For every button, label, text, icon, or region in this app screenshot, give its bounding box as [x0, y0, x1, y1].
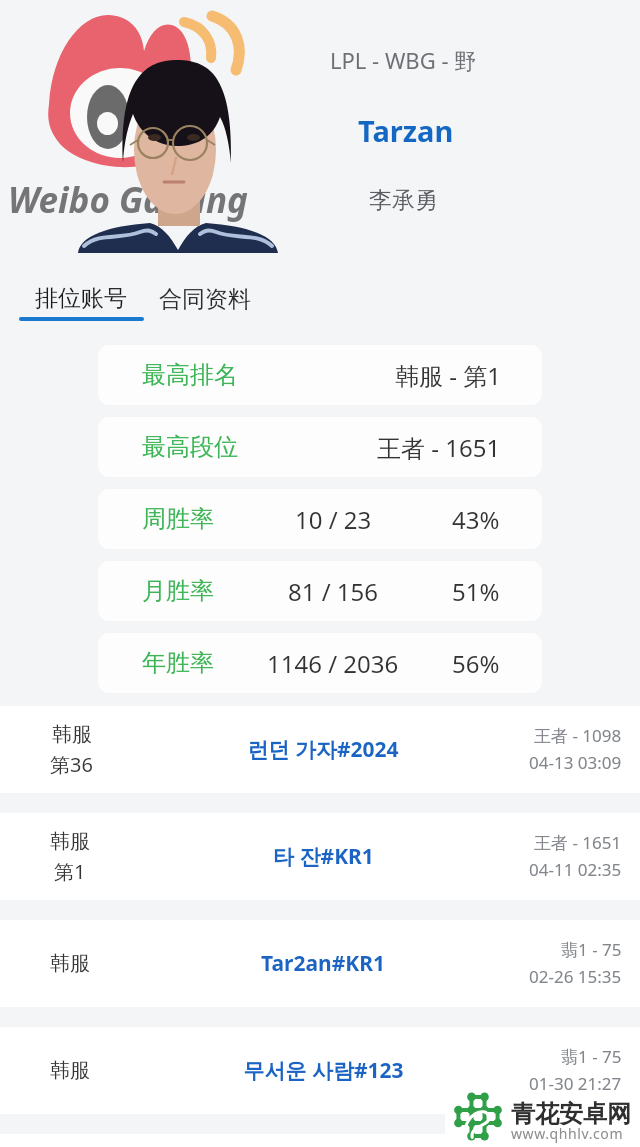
staticText: 타 잔#KR1	[273, 842, 374, 871]
staticText: 01-30 21:27	[529, 1072, 622, 1095]
staticText: 最高段位	[142, 432, 238, 462]
staticText: 排位账号	[35, 284, 127, 313]
staticText: 翡1 - 75	[561, 938, 622, 961]
staticText: 韩服	[50, 1058, 90, 1083]
staticText: 04-11 02:35	[529, 858, 622, 881]
staticText: 青花安卓网	[511, 1099, 631, 1129]
staticText: 43%	[452, 503, 500, 536]
staticText: 10 / 23	[295, 503, 372, 536]
staticText: 翡1 - 75	[561, 1045, 622, 1068]
staticText: 81 / 156	[288, 575, 379, 608]
button[interactable]: 年胜率	[98, 633, 542, 693]
staticText: 무서운 사람#123	[243, 1056, 404, 1085]
staticText: 런던 가자#2024	[247, 735, 399, 764]
staticText: 王者 - 1651	[377, 431, 501, 464]
staticText: 02-26 15:35	[529, 965, 622, 988]
staticText: 韩服	[50, 829, 90, 854]
button[interactable]: 最高排名	[98, 345, 542, 405]
button[interactable]: 韩服	[0, 920, 640, 1007]
staticText: 56%	[452, 647, 500, 680]
staticText: 最高排名	[142, 360, 238, 390]
button[interactable]: 韩服	[0, 1027, 640, 1114]
button[interactable]: 月胜率	[98, 561, 542, 621]
button[interactable]: 周胜率	[98, 489, 542, 549]
staticText: 周胜率	[142, 504, 214, 534]
staticText: Weibo Gaming	[8, 176, 248, 224]
staticText: 李承勇	[369, 186, 438, 215]
button[interactable]: 最高段位	[98, 417, 542, 477]
staticText: www.qhhlv.com	[511, 1124, 624, 1143]
button[interactable]: 韩服	[0, 706, 640, 793]
staticText: 51%	[452, 575, 500, 608]
staticText: 第36	[50, 751, 93, 778]
staticText: 韩服	[50, 951, 90, 976]
staticText: Tar2an#KR1	[261, 949, 385, 978]
staticText: 月胜率	[142, 576, 214, 606]
staticText: 韩服 - 第1	[395, 359, 501, 392]
staticText: 王者 - 1098	[534, 724, 622, 747]
staticText: 合同资料	[159, 285, 251, 314]
staticText: 第1	[54, 858, 86, 885]
button[interactable]: 排位账号	[19, 284, 144, 321]
staticText: 韩服	[52, 722, 92, 747]
staticText: LPL - WBG - 野	[330, 45, 477, 75]
staticText: 1146 / 2036	[267, 647, 399, 680]
staticText: Tarzan	[358, 111, 454, 150]
staticText: 04-13 03:09	[529, 751, 622, 774]
button[interactable]: 合同资料	[157, 283, 253, 316]
button[interactable]: 韩服	[0, 813, 640, 900]
staticText: 年胜率	[142, 648, 214, 678]
staticText: 王者 - 1651	[534, 831, 622, 854]
